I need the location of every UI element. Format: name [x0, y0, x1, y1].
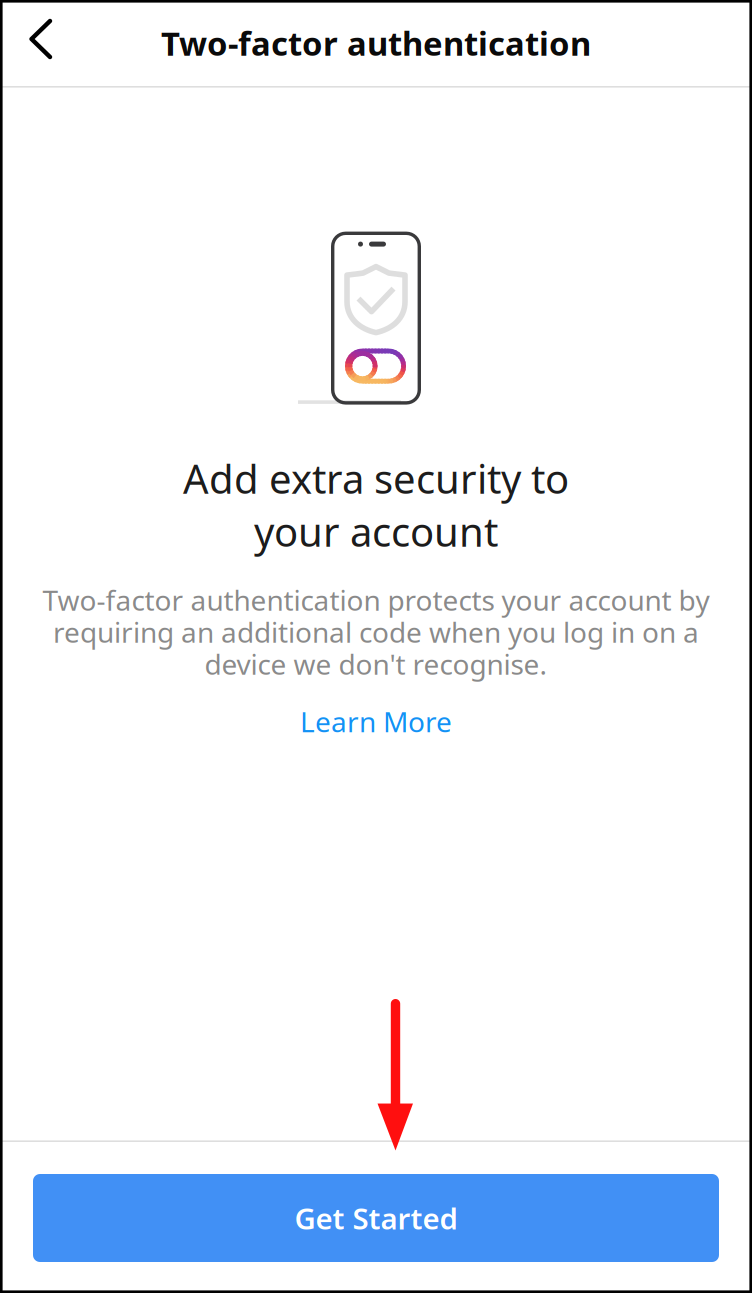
- staticText: Two-factor authentication: [161, 21, 591, 65]
- staticText: requiring an additional code when you lo…: [53, 613, 699, 650]
- staticText: Add extra security to: [183, 452, 569, 505]
- staticText: Get Started: [294, 1198, 457, 1237]
- button[interactable]: Get Started: [33, 1174, 719, 1262]
- button[interactable]: Back: [0, 0, 74, 86]
- staticText: your account: [254, 505, 498, 558]
- button[interactable]: Learn More: [286, 696, 466, 747]
- staticText: device we don't recognise.: [204, 645, 547, 682]
- staticText: Learn More: [300, 703, 452, 740]
- staticText: Two-factor authentication protects your …: [42, 581, 709, 618]
